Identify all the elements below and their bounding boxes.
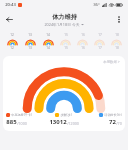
button[interactable]: 13 xyxy=(21,32,39,51)
staticText: /70 xyxy=(116,121,122,126)
staticText: /12000 xyxy=(67,121,79,126)
staticText: 18 xyxy=(115,46,119,50)
button[interactable]: Back xyxy=(2,12,17,27)
staticText: 本周数据 > xyxy=(103,59,120,64)
staticText: /1000 xyxy=(17,121,27,126)
staticText: 17 xyxy=(98,33,102,37)
staticText: 12 xyxy=(10,46,14,50)
staticText: 18 xyxy=(115,33,119,37)
staticText: 15 xyxy=(64,33,68,37)
staticText: 15 xyxy=(64,46,68,50)
staticText: 17 xyxy=(98,46,102,50)
staticText: 12 xyxy=(10,33,14,37)
button[interactable]: 12 xyxy=(3,32,21,51)
staticText: 16 xyxy=(81,46,85,50)
button[interactable]: 中高强度(千卡) xyxy=(6,112,44,127)
button[interactable]: 14 xyxy=(39,32,57,51)
staticText: 2024年1月18日 今天 xyxy=(44,22,80,27)
button[interactable]: 15 xyxy=(57,32,74,51)
staticText: 72 xyxy=(109,118,116,126)
staticText: 13 xyxy=(28,46,32,50)
staticText: 中高强度(千卡) xyxy=(11,113,32,117)
staticText: 13012 xyxy=(49,118,67,126)
button[interactable]: More options xyxy=(111,12,126,27)
staticText: 步数(步) xyxy=(60,113,72,117)
button[interactable]: 本周数据 > xyxy=(102,59,121,64)
button[interactable]: 18 xyxy=(108,32,125,51)
staticText: 体力维持 xyxy=(52,13,77,21)
button[interactable]: 本周数据 > xyxy=(3,56,125,131)
button[interactable]: 步数(步) xyxy=(44,112,83,127)
staticText: 36° xyxy=(93,2,100,8)
staticText: 16 xyxy=(81,33,85,37)
staticText: 14 xyxy=(46,33,50,37)
button[interactable]: 活动时长(分) xyxy=(83,112,122,127)
staticText: 20:43 xyxy=(5,2,16,8)
button[interactable]: 16 xyxy=(74,32,91,51)
staticText: 13 xyxy=(28,33,32,37)
staticText: 885 xyxy=(6,118,17,126)
staticText: 14 xyxy=(46,46,50,50)
button[interactable]: 17 xyxy=(91,32,108,51)
staticText: 活动时长(分) xyxy=(104,113,122,117)
